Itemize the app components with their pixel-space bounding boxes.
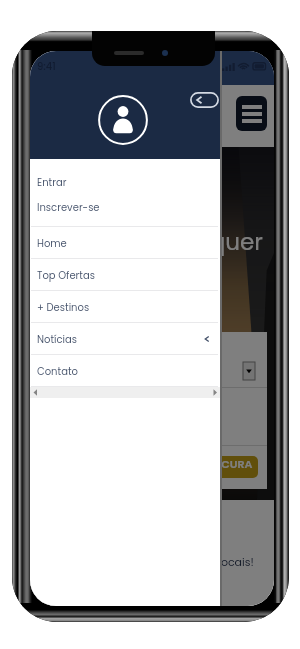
staticText: Top Ofertas (37, 268, 95, 282)
staticText: Encontre qualquer (51, 226, 263, 258)
button[interactable]: PROCURAR (199, 456, 258, 478)
staticText: destino ao redor do (51, 283, 160, 298)
staticText: Contato (37, 364, 78, 378)
button[interactable]: Inscrever-se (30, 198, 222, 216)
button[interactable]: Menu (236, 96, 267, 131)
staticText: + Destinos (37, 300, 90, 314)
button[interactable]: Contato (30, 355, 222, 386)
button[interactable]: Home (30, 227, 222, 258)
staticText: PROCURAR (199, 456, 258, 478)
staticText: Home (37, 236, 67, 250)
button[interactable]: Top Ofertas (30, 259, 222, 290)
button[interactable]: Collapse drawer (190, 92, 219, 108)
button[interactable]: + Destinos (30, 291, 222, 322)
button[interactable]: Entrar (30, 173, 222, 191)
staticText: Entrar (37, 175, 67, 189)
button[interactable]: Notícias (30, 323, 222, 354)
staticText: 9:41 (37, 59, 56, 73)
staticText: Notícias (37, 332, 78, 346)
staticText: os destinos locais! (153, 554, 254, 569)
staticText: Inscrever-se (37, 200, 100, 214)
